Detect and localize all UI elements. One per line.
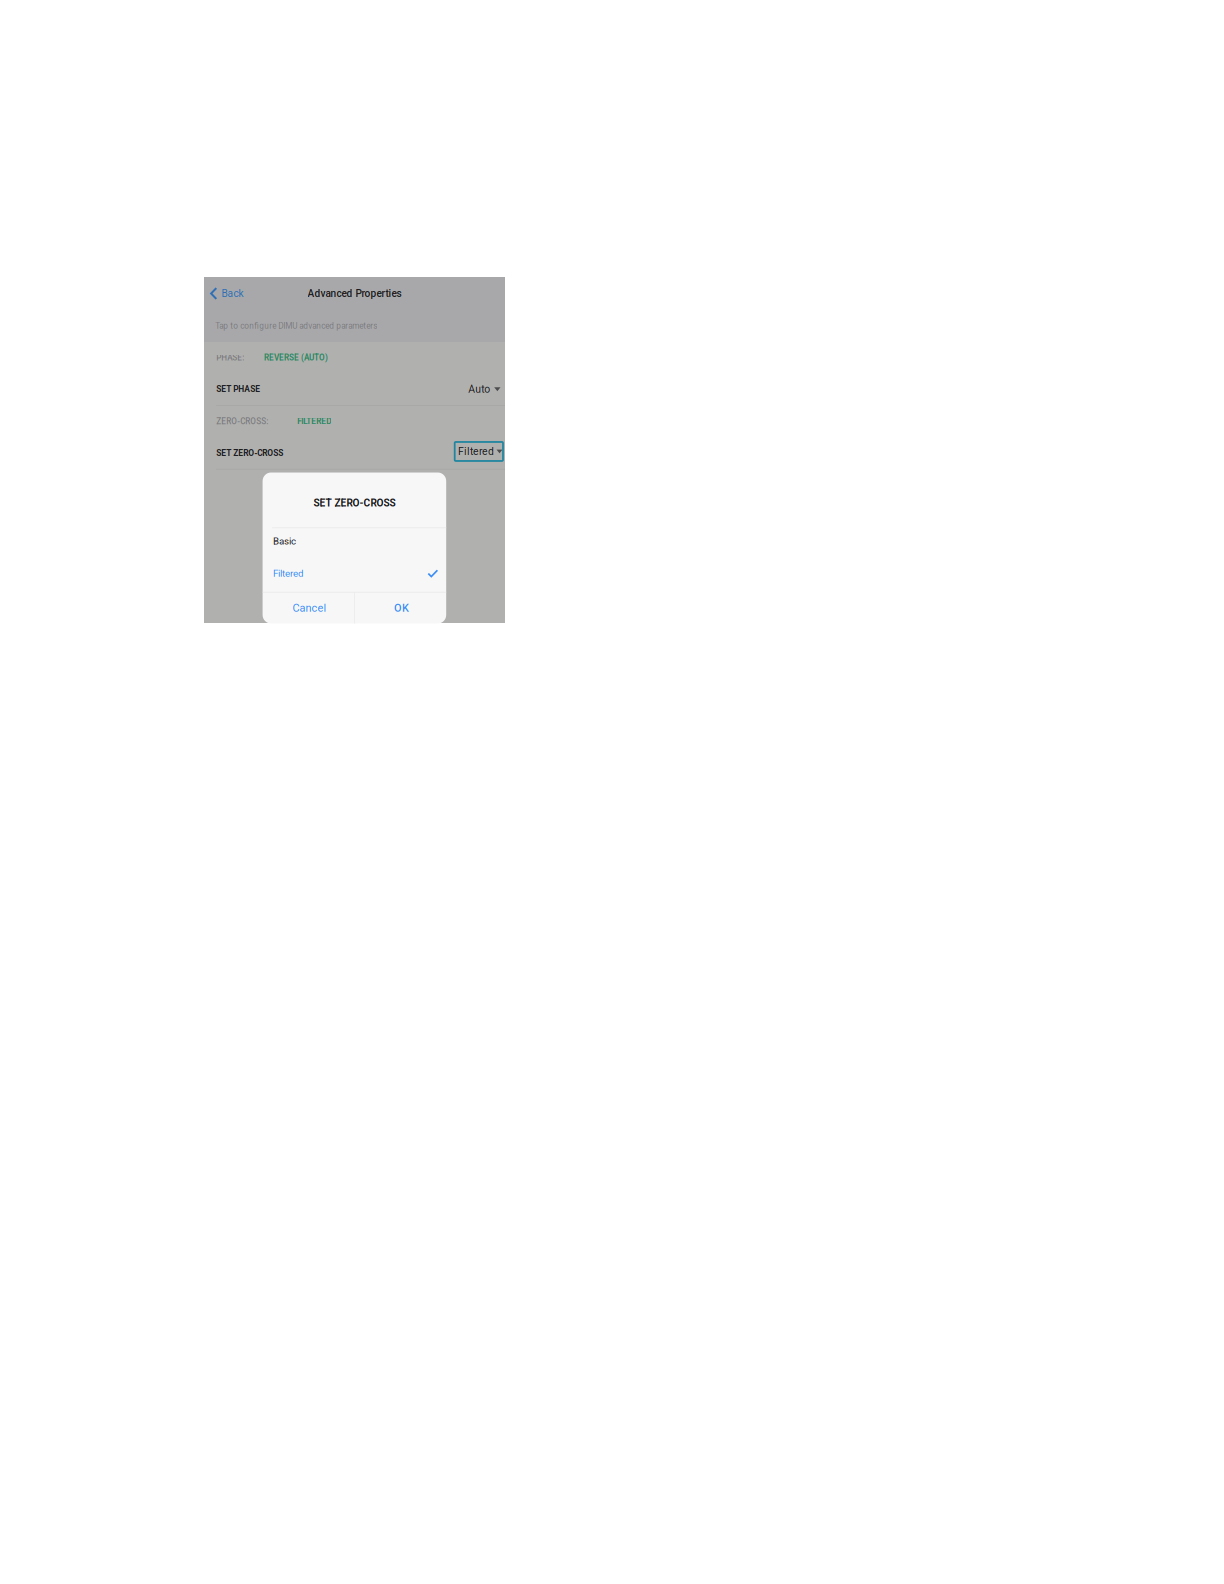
staticText: SET PHASE (216, 384, 260, 394)
button[interactable]: Cancel (263, 592, 354, 623)
button[interactable]: OK (355, 592, 446, 623)
staticText: Advanced Properties (307, 288, 401, 299)
button[interactable]: Filtered (263, 557, 446, 590)
button[interactable]: SET PHASE (204, 373, 505, 405)
staticText: Tap to configure DIMU advanced parameter… (215, 321, 377, 331)
staticText: Basic (273, 535, 296, 547)
staticText: Back (221, 287, 243, 299)
button[interactable]: SET ZERO-CROSS (204, 437, 505, 469)
staticText: SET ZERO-CROSS (216, 448, 283, 458)
staticText: Filtered (273, 568, 303, 579)
button[interactable]: Basic (263, 528, 446, 557)
staticText: Filtered (458, 445, 494, 458)
staticText: ZERO-CROSS: (216, 417, 268, 426)
staticText: REVERSE (AUTO) (264, 353, 328, 362)
staticText: PHASE: (216, 353, 244, 362)
button[interactable]: Back (204, 277, 256, 310)
staticText: Cancel (292, 602, 326, 614)
staticText: Auto (468, 383, 490, 395)
staticText: FILTERED (297, 417, 331, 426)
staticText: SET ZERO-CROSS (313, 497, 395, 509)
staticText: OK (394, 602, 409, 614)
